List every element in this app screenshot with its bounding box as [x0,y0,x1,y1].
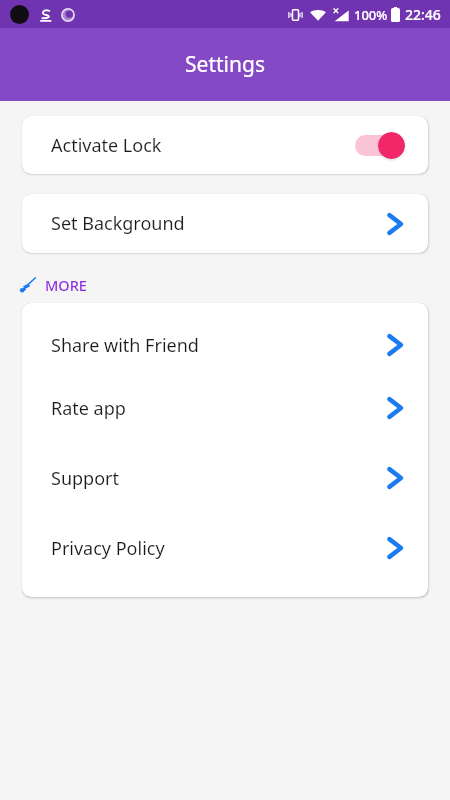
staticText: Settings [185,50,265,79]
staticText: MORE [45,275,87,295]
staticText: Share with Friend [51,333,385,358]
button[interactable]: Support [22,443,428,513]
staticText: Activate Lock [51,133,353,158]
staticText: 100% [354,6,388,24]
staticText: 22:46 [405,5,441,24]
button[interactable]: Activate Lock toggle [353,130,405,160]
staticText: Support [51,466,385,491]
staticText: Privacy Policy [51,536,385,561]
button[interactable]: Privacy Policy [22,513,428,583]
button[interactable]: Set Background [22,194,428,253]
button[interactable]: Activate Lock [22,116,428,174]
button[interactable]: Rate app [22,373,428,443]
staticText: Set Background [51,211,385,236]
staticText: Rate app [51,396,385,421]
button[interactable]: Share with Friend [22,317,428,373]
